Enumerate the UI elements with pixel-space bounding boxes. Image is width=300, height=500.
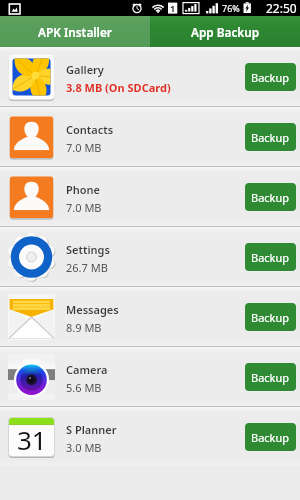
button[interactable]: Phone [0,167,300,226]
staticText: Backup [251,370,290,385]
staticText: Gallery [66,62,104,77]
staticText: App Backup [191,24,260,40]
staticText: 3.8 MB (On SDCard) [66,80,171,95]
staticText: Backup [251,310,290,325]
staticText: 1 [170,2,176,14]
button[interactable]: Backup [245,63,296,91]
button[interactable]: Backup [245,423,296,451]
staticText: Backup [251,190,290,205]
button[interactable]: Backup [245,303,296,331]
staticText: 26.7 MB [66,260,108,275]
staticText: Backup [251,430,290,445]
button[interactable]: Backup [245,123,296,151]
button[interactable]: Backup [245,363,296,391]
staticText: 3.0 MB [66,440,102,455]
staticText: Camera [66,362,108,377]
staticText: S Planner [66,422,117,437]
staticText: 8.9 MB [66,320,102,335]
staticText: 76% [222,2,240,14]
staticText: Backup [251,130,290,145]
staticText: 22:50 [266,0,297,16]
staticText: Settings [66,242,110,257]
staticText: Backup [251,250,290,265]
button[interactable]: App Backup [150,16,300,47]
staticText: Phone [66,182,101,197]
button[interactable]: Backup [245,183,296,211]
button[interactable]: Backup [245,243,296,271]
button[interactable]: 31 [0,407,300,466]
button[interactable]: Gallery [0,47,300,106]
button[interactable]: Settings [0,227,300,286]
staticText: APK Installer [38,24,112,40]
staticText: Contacts [66,122,114,137]
button[interactable]: Messages [0,287,300,346]
staticText: Backup [251,70,290,85]
staticText: 7.0 MB [66,140,102,155]
staticText: Messages [66,302,119,317]
staticText: 5.6 MB [66,380,102,395]
button[interactable]: Contacts [0,107,300,166]
staticText: 31 [17,422,47,457]
button[interactable]: Camera [0,347,300,406]
staticText: 7.0 MB [66,200,102,215]
button[interactable]: APK Installer [0,16,150,47]
